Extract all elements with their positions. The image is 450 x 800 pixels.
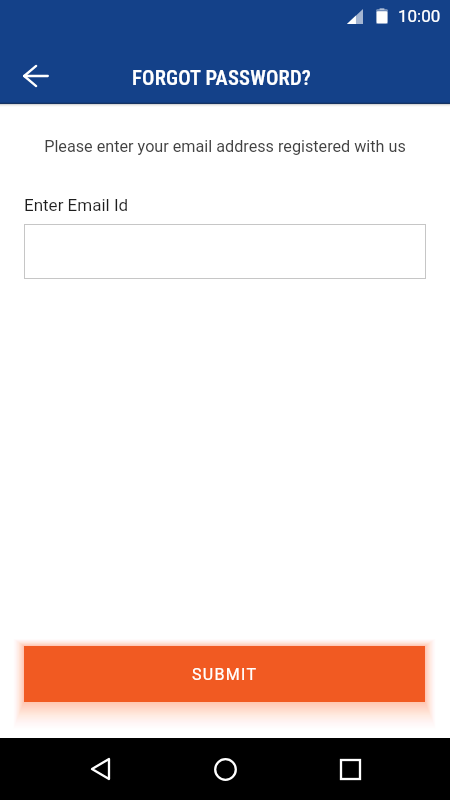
button[interactable]: Back [77, 746, 123, 792]
staticText: FORGOT PASSWORD? [132, 66, 312, 90]
button[interactable]: Home [202, 746, 248, 792]
button[interactable]: Recents [327, 746, 373, 792]
button[interactable] [24, 224, 426, 279]
button[interactable]: SUBMIT [24, 646, 425, 702]
button[interactable]: Back [12, 52, 60, 100]
staticText: 10:00 [398, 6, 441, 26]
staticText: SUBMIT [192, 665, 258, 684]
staticText: Enter Email Id [24, 195, 129, 215]
staticText: Please enter your email address register… [0, 137, 450, 156]
